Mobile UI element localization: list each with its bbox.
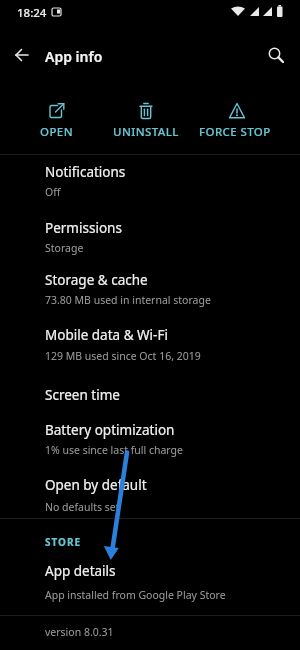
staticText: UNINSTALL	[113, 124, 179, 140]
button[interactable]	[260, 39, 292, 71]
staticText: 73.80 MB used in internal storage	[45, 293, 211, 307]
staticText: FORCE STOP	[199, 124, 271, 140]
staticText: Notifications	[45, 163, 126, 181]
button[interactable]	[6, 39, 38, 71]
staticText: 18:24	[17, 5, 47, 21]
staticText: Storage	[45, 241, 84, 255]
button[interactable]: FORCE STOP	[195, 88, 275, 148]
button[interactable]: Permissions	[0, 207, 300, 259]
button[interactable]: Storage & cache	[0, 259, 300, 311]
button[interactable]: Battery optimization	[0, 409, 300, 461]
button[interactable]: Open by default	[0, 464, 300, 516]
staticText: 129 MB used since Oct 16, 2019	[45, 349, 201, 363]
staticText: Battery optimization	[45, 421, 175, 439]
button[interactable]: OPEN	[16, 88, 96, 148]
staticText: Open by default	[45, 476, 147, 494]
button[interactable]: App details	[0, 550, 300, 602]
staticText: App details	[45, 562, 116, 580]
staticText: STORE	[45, 535, 82, 549]
button[interactable]: UNINSTALL	[106, 88, 186, 148]
button[interactable]: Mobile data & Wi-Fi	[0, 314, 300, 366]
staticText: version 8.0.31	[45, 625, 114, 639]
button[interactable]: Screen time	[0, 374, 300, 414]
staticText: OPEN	[40, 124, 73, 140]
staticText: Mobile data & Wi-Fi	[45, 326, 168, 344]
staticText: App info	[45, 47, 103, 66]
staticText: 1% use since last full charge	[45, 443, 183, 457]
staticText: Storage & cache	[45, 271, 148, 289]
staticText: No defaults set	[45, 500, 120, 514]
staticText: Permissions	[45, 219, 122, 237]
staticText: App installed from Google Play Store	[45, 588, 226, 602]
staticText: Screen time	[45, 386, 120, 404]
staticText: Off	[45, 185, 61, 199]
button[interactable]: Notifications	[0, 151, 300, 203]
